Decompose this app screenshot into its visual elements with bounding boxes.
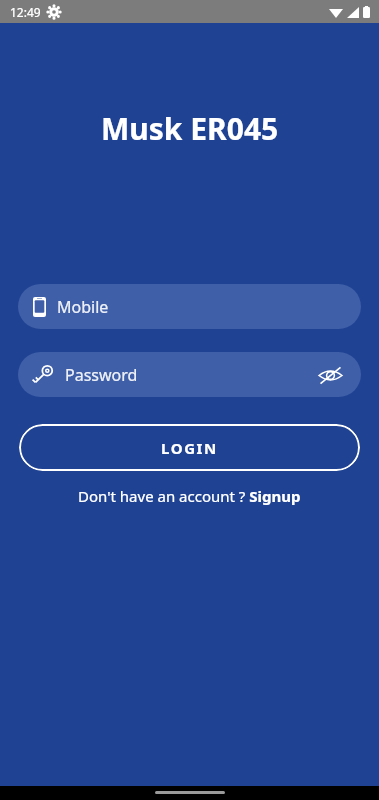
other: Password: [33, 364, 54, 385]
other: Mobile: [33, 297, 46, 317]
staticText: LOGIN: [161, 438, 218, 458]
button[interactable]: Mobile: [18, 284, 361, 329]
staticText: Don't have an account ? Signup: [78, 486, 301, 506]
button[interactable]: Toggle password visibility: [315, 360, 345, 390]
staticText: Mobile: [57, 296, 109, 318]
button[interactable]: Password: [18, 352, 361, 397]
staticText: 12:49: [10, 4, 41, 20]
staticText: Password: [65, 364, 138, 386]
staticText: Musk ER045: [101, 108, 279, 149]
button[interactable]: LOGIN: [19, 424, 360, 471]
button[interactable]: Don't have an account ? Signup: [72, 483, 307, 509]
